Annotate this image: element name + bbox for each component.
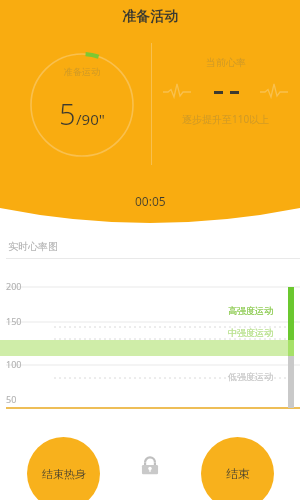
staticText: /90" (76, 109, 105, 129)
staticText: 逐步提升至110以上 (182, 112, 270, 126)
staticText: 实时心率图 (8, 240, 58, 253)
staticText: 高强度运动 (228, 305, 273, 316)
button[interactable]: 结束热身 (27, 437, 100, 500)
staticText: 200 (6, 280, 22, 292)
staticText: 50 (6, 393, 17, 405)
button[interactable]: Lock screen (133, 449, 167, 483)
button[interactable]: 结束 (201, 437, 274, 500)
staticText: 准备运动 (64, 66, 100, 77)
staticText: 100 (6, 358, 22, 370)
staticText: 低强度运动 (228, 371, 273, 382)
staticText: 结束 (226, 466, 250, 481)
staticText: 中强度运动 (228, 327, 273, 338)
staticText: 00:05 (135, 193, 166, 209)
staticText: 准备活动 (122, 8, 178, 26)
staticText: 5 (59, 94, 76, 133)
staticText: 结束热身 (42, 467, 86, 481)
staticText: 150 (6, 315, 22, 327)
staticText: 当前心率 (206, 56, 246, 69)
